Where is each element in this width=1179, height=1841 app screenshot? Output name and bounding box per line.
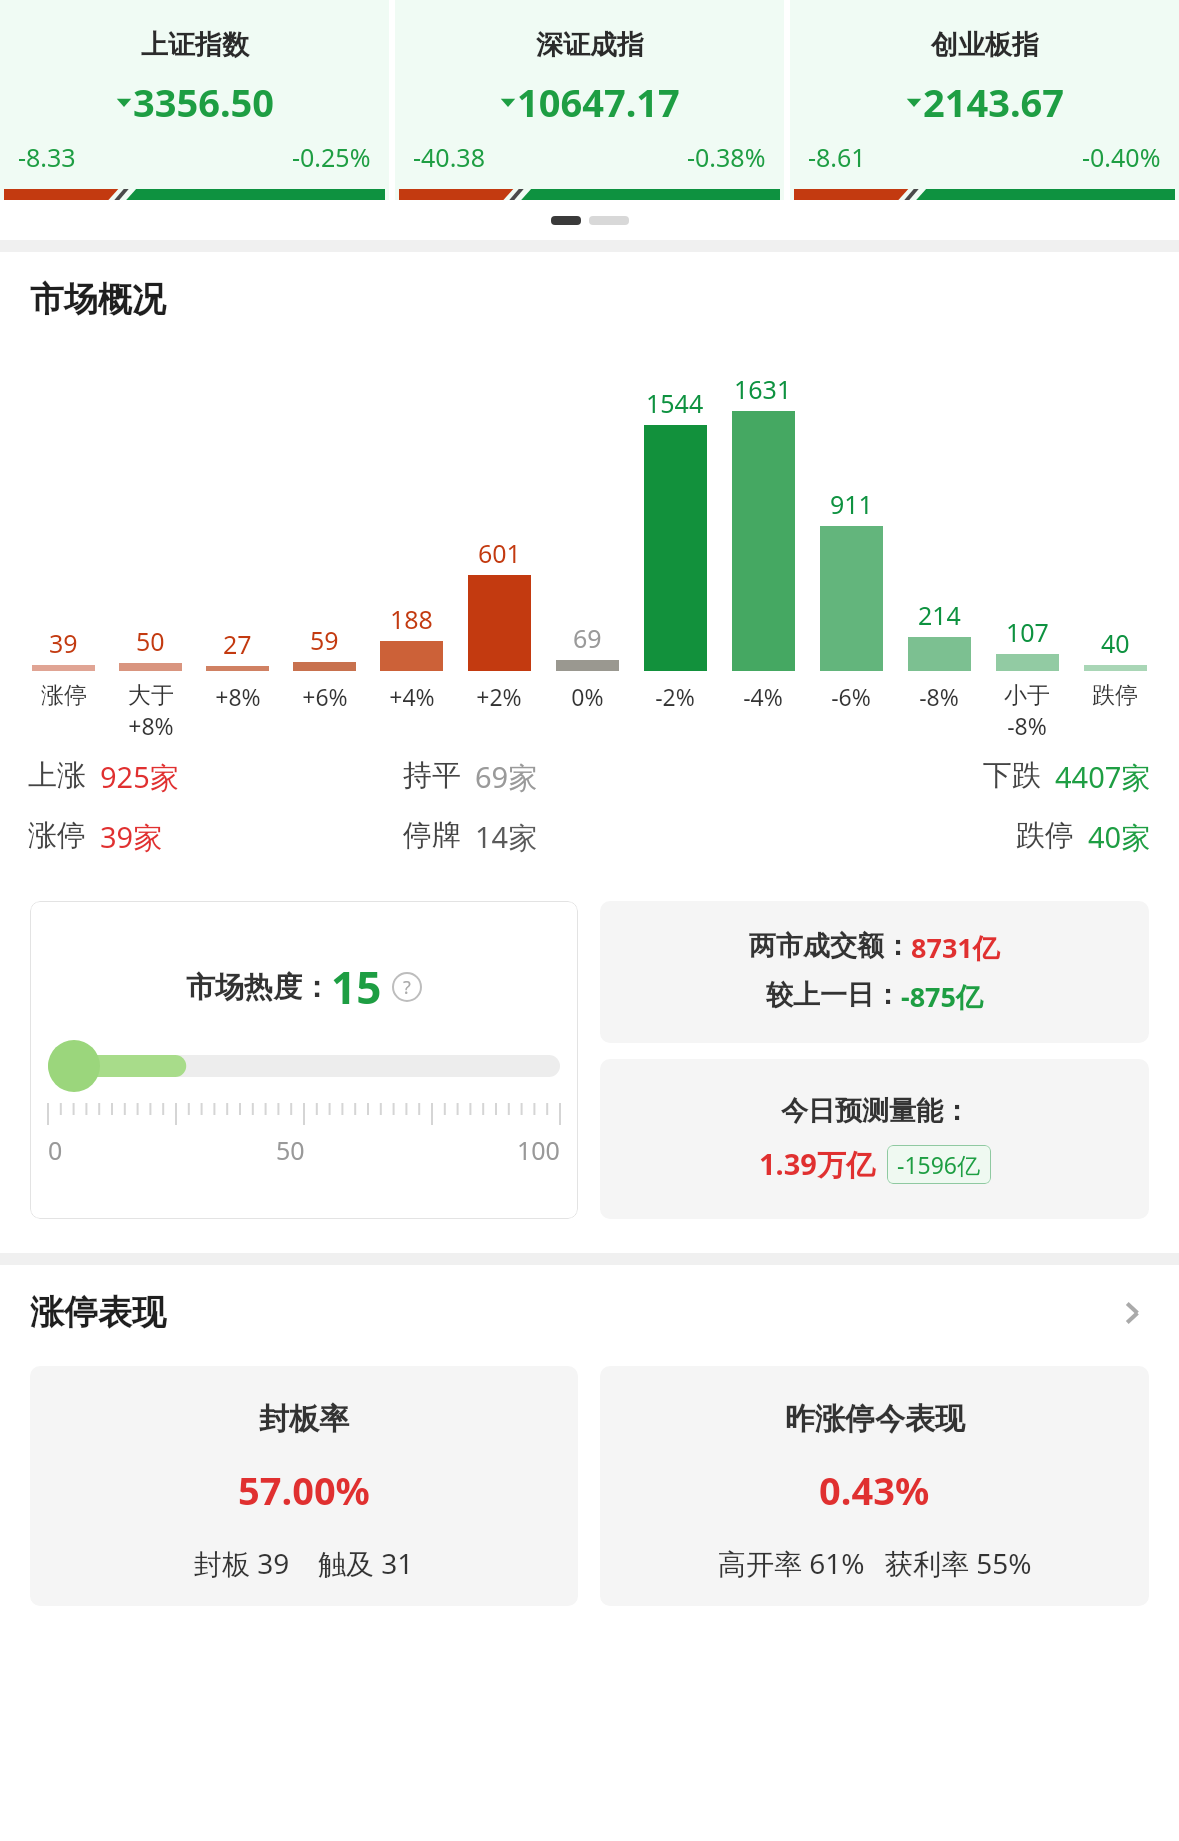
staticText: 下跌 <box>983 757 1041 794</box>
staticText: -1596亿 <box>897 1149 981 1180</box>
staticText: 40家 <box>1088 817 1151 857</box>
staticText: 50 <box>276 1133 305 1167</box>
staticText: 50 <box>136 624 165 658</box>
button[interactable]: 今日预测量能： <box>600 1059 1149 1219</box>
staticText: 跌停 <box>1016 817 1074 854</box>
staticText: 获利率 55% <box>885 1544 1032 1582</box>
staticText: -8% <box>1007 710 1047 741</box>
other: 更多 <box>1115 1296 1149 1330</box>
staticText: 昨涨停今表现 <box>785 1400 965 1438</box>
staticText: 925家 <box>100 757 179 797</box>
staticText: 8731亿 <box>911 929 1000 966</box>
staticText: 封板 39 <box>194 1544 290 1582</box>
staticText: 停牌 <box>403 817 461 854</box>
staticText: 57.00% <box>238 1464 370 1516</box>
staticText: 0.43% <box>819 1464 930 1516</box>
staticText: 触及 31 <box>318 1544 414 1582</box>
button[interactable]: 涨停表现 <box>30 1291 1149 1334</box>
staticText: 14家 <box>475 817 538 857</box>
staticText: 市场热度： <box>186 969 331 1006</box>
staticText: 59 <box>310 623 339 657</box>
staticText: -2% <box>655 681 695 712</box>
button[interactable]: 帮助 <box>392 972 422 1002</box>
button[interactable]: 封板率 <box>30 1366 578 1606</box>
staticText: 69 <box>573 621 602 655</box>
staticText: 上涨 <box>28 757 86 794</box>
button[interactable]: 昨涨停今表现 <box>600 1366 1149 1606</box>
staticText: 涨停 <box>28 817 86 854</box>
staticText: 封板率 <box>259 1400 349 1438</box>
staticText: -875亿 <box>901 978 983 1015</box>
staticText: 持平 <box>403 757 461 794</box>
staticText: 39家 <box>100 817 163 857</box>
staticText: 涨停表现 <box>30 1291 166 1334</box>
staticText: 1544 <box>646 386 704 420</box>
staticText: +8% <box>215 681 261 712</box>
button[interactable]: 创业板指 <box>790 0 1179 200</box>
staticText: 0% <box>571 681 604 712</box>
staticText: -4% <box>743 681 783 712</box>
staticText: 大于 <box>128 681 174 710</box>
staticText: +2% <box>476 681 522 712</box>
staticText: 深证成指 <box>536 28 644 62</box>
staticText: 今日预测量能： <box>781 1094 970 1128</box>
staticText: -0.25% <box>292 140 371 174</box>
staticText: -8.33 <box>18 140 76 174</box>
staticText: 214 <box>918 598 961 632</box>
staticText: 创业板指 <box>931 28 1039 62</box>
staticText: 100 <box>517 1133 560 1167</box>
staticText: 188 <box>390 602 433 636</box>
staticText: -8.61 <box>808 140 866 174</box>
staticText: 上证指数 <box>141 28 249 62</box>
staticText: 市场概况 <box>30 278 166 321</box>
staticText: 39 <box>49 626 78 660</box>
staticText: 两市成交额： <box>749 929 911 963</box>
staticText: 601 <box>478 536 521 570</box>
staticText: 10647.17 <box>517 76 680 128</box>
button[interactable]: 深证成指 <box>395 0 784 200</box>
button[interactable]: 市场热度： <box>30 901 578 1219</box>
staticText: +6% <box>302 681 348 712</box>
staticText: -6% <box>831 681 871 712</box>
staticText: 27 <box>223 627 252 661</box>
staticText: 较上一日： <box>766 978 901 1012</box>
staticText: 涨停 <box>41 681 87 710</box>
staticText: -40.38 <box>413 140 485 174</box>
staticText: 3356.50 <box>133 76 275 128</box>
staticText: 40 <box>1101 626 1130 660</box>
staticText: -8% <box>919 681 959 712</box>
staticText: 1.39万亿 <box>759 1144 875 1184</box>
button[interactable]: 两市成交额： <box>600 901 1149 1043</box>
staticText: 1631 <box>734 372 792 406</box>
staticText: +4% <box>389 681 435 712</box>
staticText: ? <box>403 975 411 1000</box>
staticText: 0 <box>48 1133 63 1167</box>
staticText: +8% <box>128 710 174 741</box>
staticText: 跌停 <box>1092 681 1138 710</box>
button[interactable]: 上证指数 <box>0 0 389 200</box>
staticText: 15 <box>331 957 382 1017</box>
staticText: 69家 <box>475 757 538 797</box>
staticText: 107 <box>1006 615 1049 649</box>
staticText: 2143.67 <box>923 76 1065 128</box>
staticText: 小于 <box>1004 681 1050 710</box>
staticText: -0.40% <box>1082 140 1161 174</box>
staticText: 911 <box>830 487 873 521</box>
staticText: 4407家 <box>1055 757 1151 797</box>
staticText: -0.38% <box>687 140 766 174</box>
staticText: 高开率 61% <box>718 1544 865 1582</box>
